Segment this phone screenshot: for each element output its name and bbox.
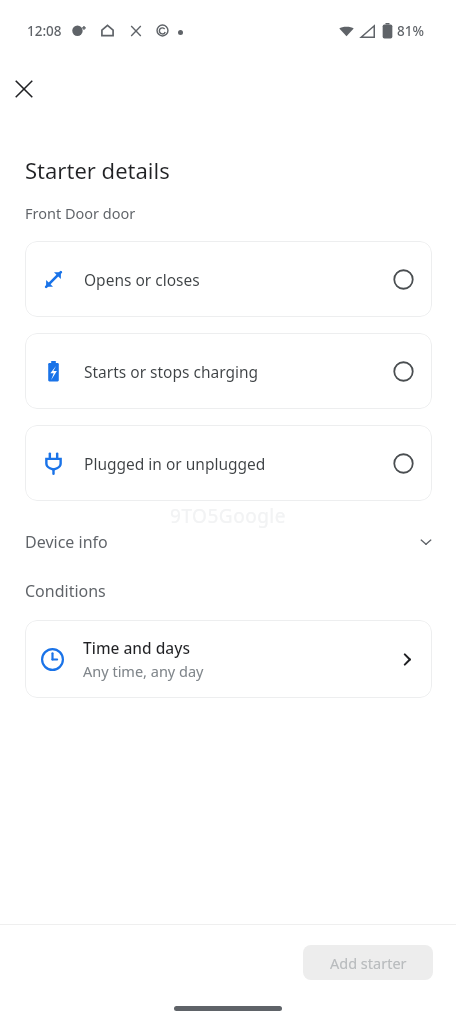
- button[interactable]: Starts or stops charging: [25, 333, 432, 409]
- staticText: Plugged in or unplugged: [84, 453, 266, 474]
- staticText: Any time, any day: [83, 661, 204, 681]
- staticText: 81%: [397, 22, 424, 40]
- staticText: Starter details: [25, 155, 170, 185]
- staticText: Opens or closes: [84, 269, 200, 290]
- staticText: Time and days: [83, 637, 190, 658]
- staticText: Conditions: [25, 580, 106, 602]
- button[interactable]: Device info: [0, 520, 456, 564]
- staticText: Front Door door: [25, 203, 136, 223]
- button[interactable]: Opens or closes: [25, 241, 432, 317]
- button[interactable]: Time and days: [25, 620, 432, 698]
- button[interactable]: Add starter: [303, 945, 433, 980]
- staticText: Add starter: [330, 953, 407, 973]
- button[interactable]: Close: [6, 71, 42, 107]
- staticText: Device info: [25, 531, 108, 553]
- button[interactable]: Plugged in or unplugged: [25, 425, 432, 501]
- staticText: Starts or stops charging: [84, 361, 259, 382]
- staticText: 12:08: [27, 22, 62, 40]
